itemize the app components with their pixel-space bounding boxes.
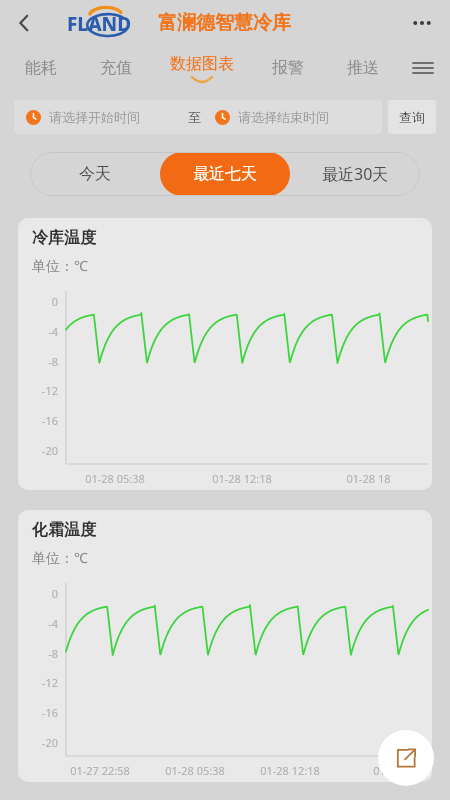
staticText: 请选择开始时间 — [49, 109, 140, 125]
staticText: 01-2 — [373, 763, 396, 778]
button[interactable]: Back — [6, 5, 42, 41]
staticText: -20 — [18, 443, 58, 458]
button[interactable]: 数据图表 — [153, 46, 250, 90]
staticText: 冷库温度 — [32, 228, 96, 248]
staticText: 0 — [18, 294, 58, 309]
staticText: 0 — [18, 586, 58, 601]
staticText: -8 — [18, 354, 58, 369]
staticText: -12 — [18, 383, 58, 398]
button[interactable]: 最近30天 — [290, 152, 420, 196]
button[interactable]: 报警 — [250, 46, 325, 90]
staticText: 单位：℃ — [32, 256, 88, 275]
staticText: 报警 — [272, 58, 304, 78]
button[interactable]: More options — [402, 3, 442, 43]
staticText: 请选择结束时间 — [238, 109, 329, 125]
staticText: 今天 — [79, 164, 111, 184]
staticText: 01-28 12:18 — [260, 763, 320, 778]
staticText: 化霜温度 — [32, 520, 96, 540]
button[interactable]: Share — [378, 730, 434, 786]
staticText: 01-28 05:38 — [85, 471, 145, 486]
staticText: -16 — [18, 413, 58, 428]
staticText: 查询 — [399, 109, 425, 125]
button[interactable]: 今天 — [30, 152, 160, 196]
staticText: -16 — [18, 705, 58, 720]
button[interactable]: 查询 — [388, 100, 436, 134]
staticText: 单位：℃ — [32, 548, 88, 567]
staticText: 最近30天 — [322, 163, 389, 185]
staticText: 充值 — [100, 58, 132, 78]
staticText: 01-28 18 — [346, 471, 391, 486]
button[interactable]: 化霜温度 — [18, 510, 432, 782]
button[interactable]: 请选择开始时间 — [26, 100, 188, 134]
staticText: -4 — [18, 324, 58, 339]
staticText: FLAND — [67, 11, 132, 37]
button[interactable]: 冷库温度 — [18, 218, 432, 490]
staticText: -8 — [18, 646, 58, 661]
staticText: -20 — [18, 735, 58, 750]
staticText: -12 — [18, 675, 58, 690]
staticText: 至 — [188, 109, 201, 125]
button[interactable]: 最近七天 — [160, 152, 290, 196]
staticText: 01-28 05:38 — [165, 763, 225, 778]
staticText: 推送 — [347, 58, 379, 78]
button[interactable]: 请选择结束时间 — [215, 100, 378, 134]
staticText: 最近七天 — [193, 164, 257, 184]
button[interactable]: 能耗 — [4, 46, 78, 90]
button[interactable]: 推送 — [325, 46, 400, 90]
staticText: 01-28 12:18 — [212, 471, 272, 486]
button[interactable]: Menu — [400, 46, 446, 90]
button[interactable]: 充值 — [78, 46, 153, 90]
staticText: 能耗 — [25, 58, 57, 78]
staticText: -4 — [18, 616, 58, 631]
staticText: 01-27 22:58 — [70, 763, 130, 778]
staticText: 数据图表 — [170, 54, 234, 74]
staticText: 富澜德智慧冷库 — [158, 11, 291, 35]
